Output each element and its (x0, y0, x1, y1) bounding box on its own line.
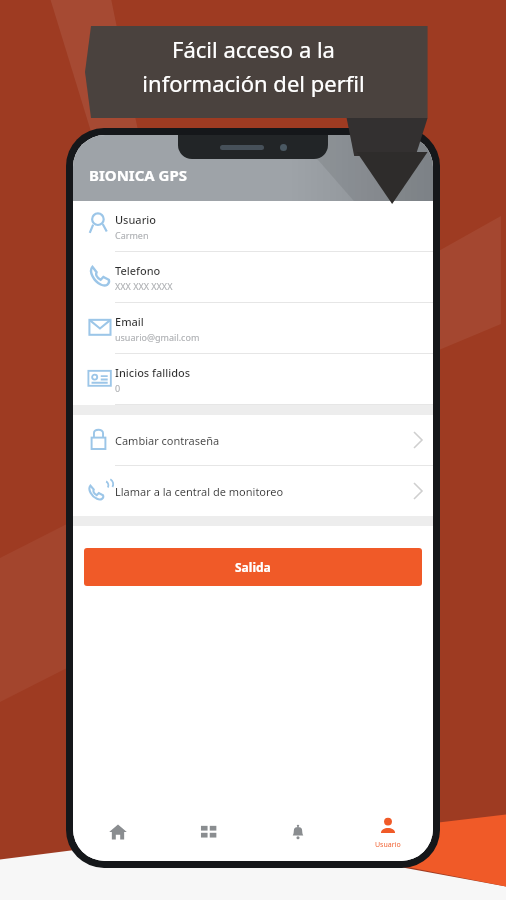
staticText: Telefono (115, 263, 161, 278)
staticText: Salida (235, 559, 271, 575)
staticText: Cambiar contraseña (115, 433, 403, 448)
staticText: Fácil acceso a la (172, 34, 335, 64)
button[interactable]: Usuario (73, 201, 433, 252)
button[interactable]: Cambiar contraseña (73, 415, 433, 466)
staticText: Usuario (375, 840, 401, 850)
button[interactable]: Email (73, 303, 433, 354)
button[interactable]: Telefono (73, 252, 433, 303)
staticText: información del perfil (142, 68, 365, 98)
button[interactable]: Inicios fallidos (73, 354, 433, 405)
button[interactable]: Dashboard (163, 803, 253, 861)
staticText: Usuario (115, 212, 156, 227)
staticText: BIONICA GPS (89, 165, 188, 185)
button[interactable]: Notifications (253, 803, 343, 861)
staticText: XXX XXX XXXX (115, 280, 173, 292)
staticText: 0 (115, 382, 121, 394)
staticText: Email (115, 314, 144, 329)
staticText: usuario@gmail.com (115, 331, 200, 343)
staticText: Inicios fallidos (115, 365, 191, 380)
staticText: Carmen (115, 229, 149, 241)
button[interactable]: Home (73, 803, 163, 861)
button[interactable]: Usuario (343, 803, 433, 861)
button[interactable]: Llamar a la central de monitoreo (73, 466, 433, 516)
staticText: Llamar a la central de monitoreo (115, 484, 403, 499)
button[interactable]: Salida (84, 548, 422, 586)
